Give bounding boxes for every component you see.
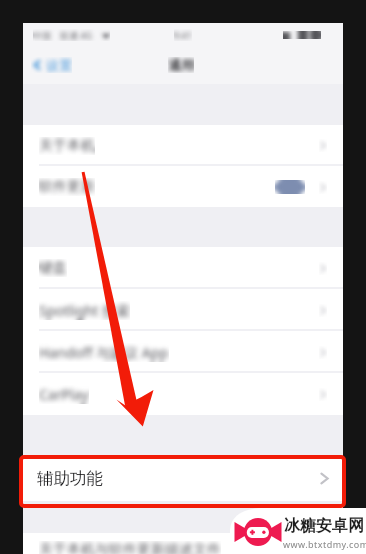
other: Open accessibility bbox=[319, 470, 330, 487]
staticText: 冰糖安卓网 bbox=[284, 516, 364, 536]
staticText: www.btxtdmy.com bbox=[283, 538, 366, 550]
button[interactable]: Spotlight 搜索 bbox=[23, 289, 343, 331]
staticText: 辅助功能 bbox=[37, 468, 103, 489]
staticText: CarPlay bbox=[39, 385, 89, 404]
button[interactable] bbox=[23, 533, 343, 554]
staticText: 关于本机与软件更新描述文件 bbox=[39, 541, 221, 554]
button[interactable]: Handoff 与建议 App bbox=[23, 331, 343, 373]
button[interactable]: CarPlay bbox=[23, 373, 343, 415]
staticText: 键盘 bbox=[39, 259, 67, 277]
button[interactable]: 辅助功能 bbox=[23, 456, 343, 501]
staticText: 联通 4G bbox=[60, 29, 93, 41]
staticText: Spotlight 搜索 bbox=[39, 301, 130, 320]
staticText: 软件更新 bbox=[39, 178, 95, 196]
button[interactable]: 软件更新 bbox=[23, 166, 343, 207]
button[interactable]: 键盘 bbox=[23, 247, 343, 289]
staticText: Handoff 与建议 App bbox=[39, 343, 169, 362]
staticText: 中国 bbox=[33, 30, 51, 41]
staticText: 关于本机 bbox=[39, 137, 95, 155]
staticText: 通用 bbox=[168, 57, 194, 73]
button[interactable]: 关于本机 bbox=[23, 125, 343, 166]
button[interactable]: 设置 bbox=[31, 57, 72, 73]
staticText: 9:41 bbox=[174, 29, 192, 41]
staticText: 设置 bbox=[46, 57, 72, 73]
